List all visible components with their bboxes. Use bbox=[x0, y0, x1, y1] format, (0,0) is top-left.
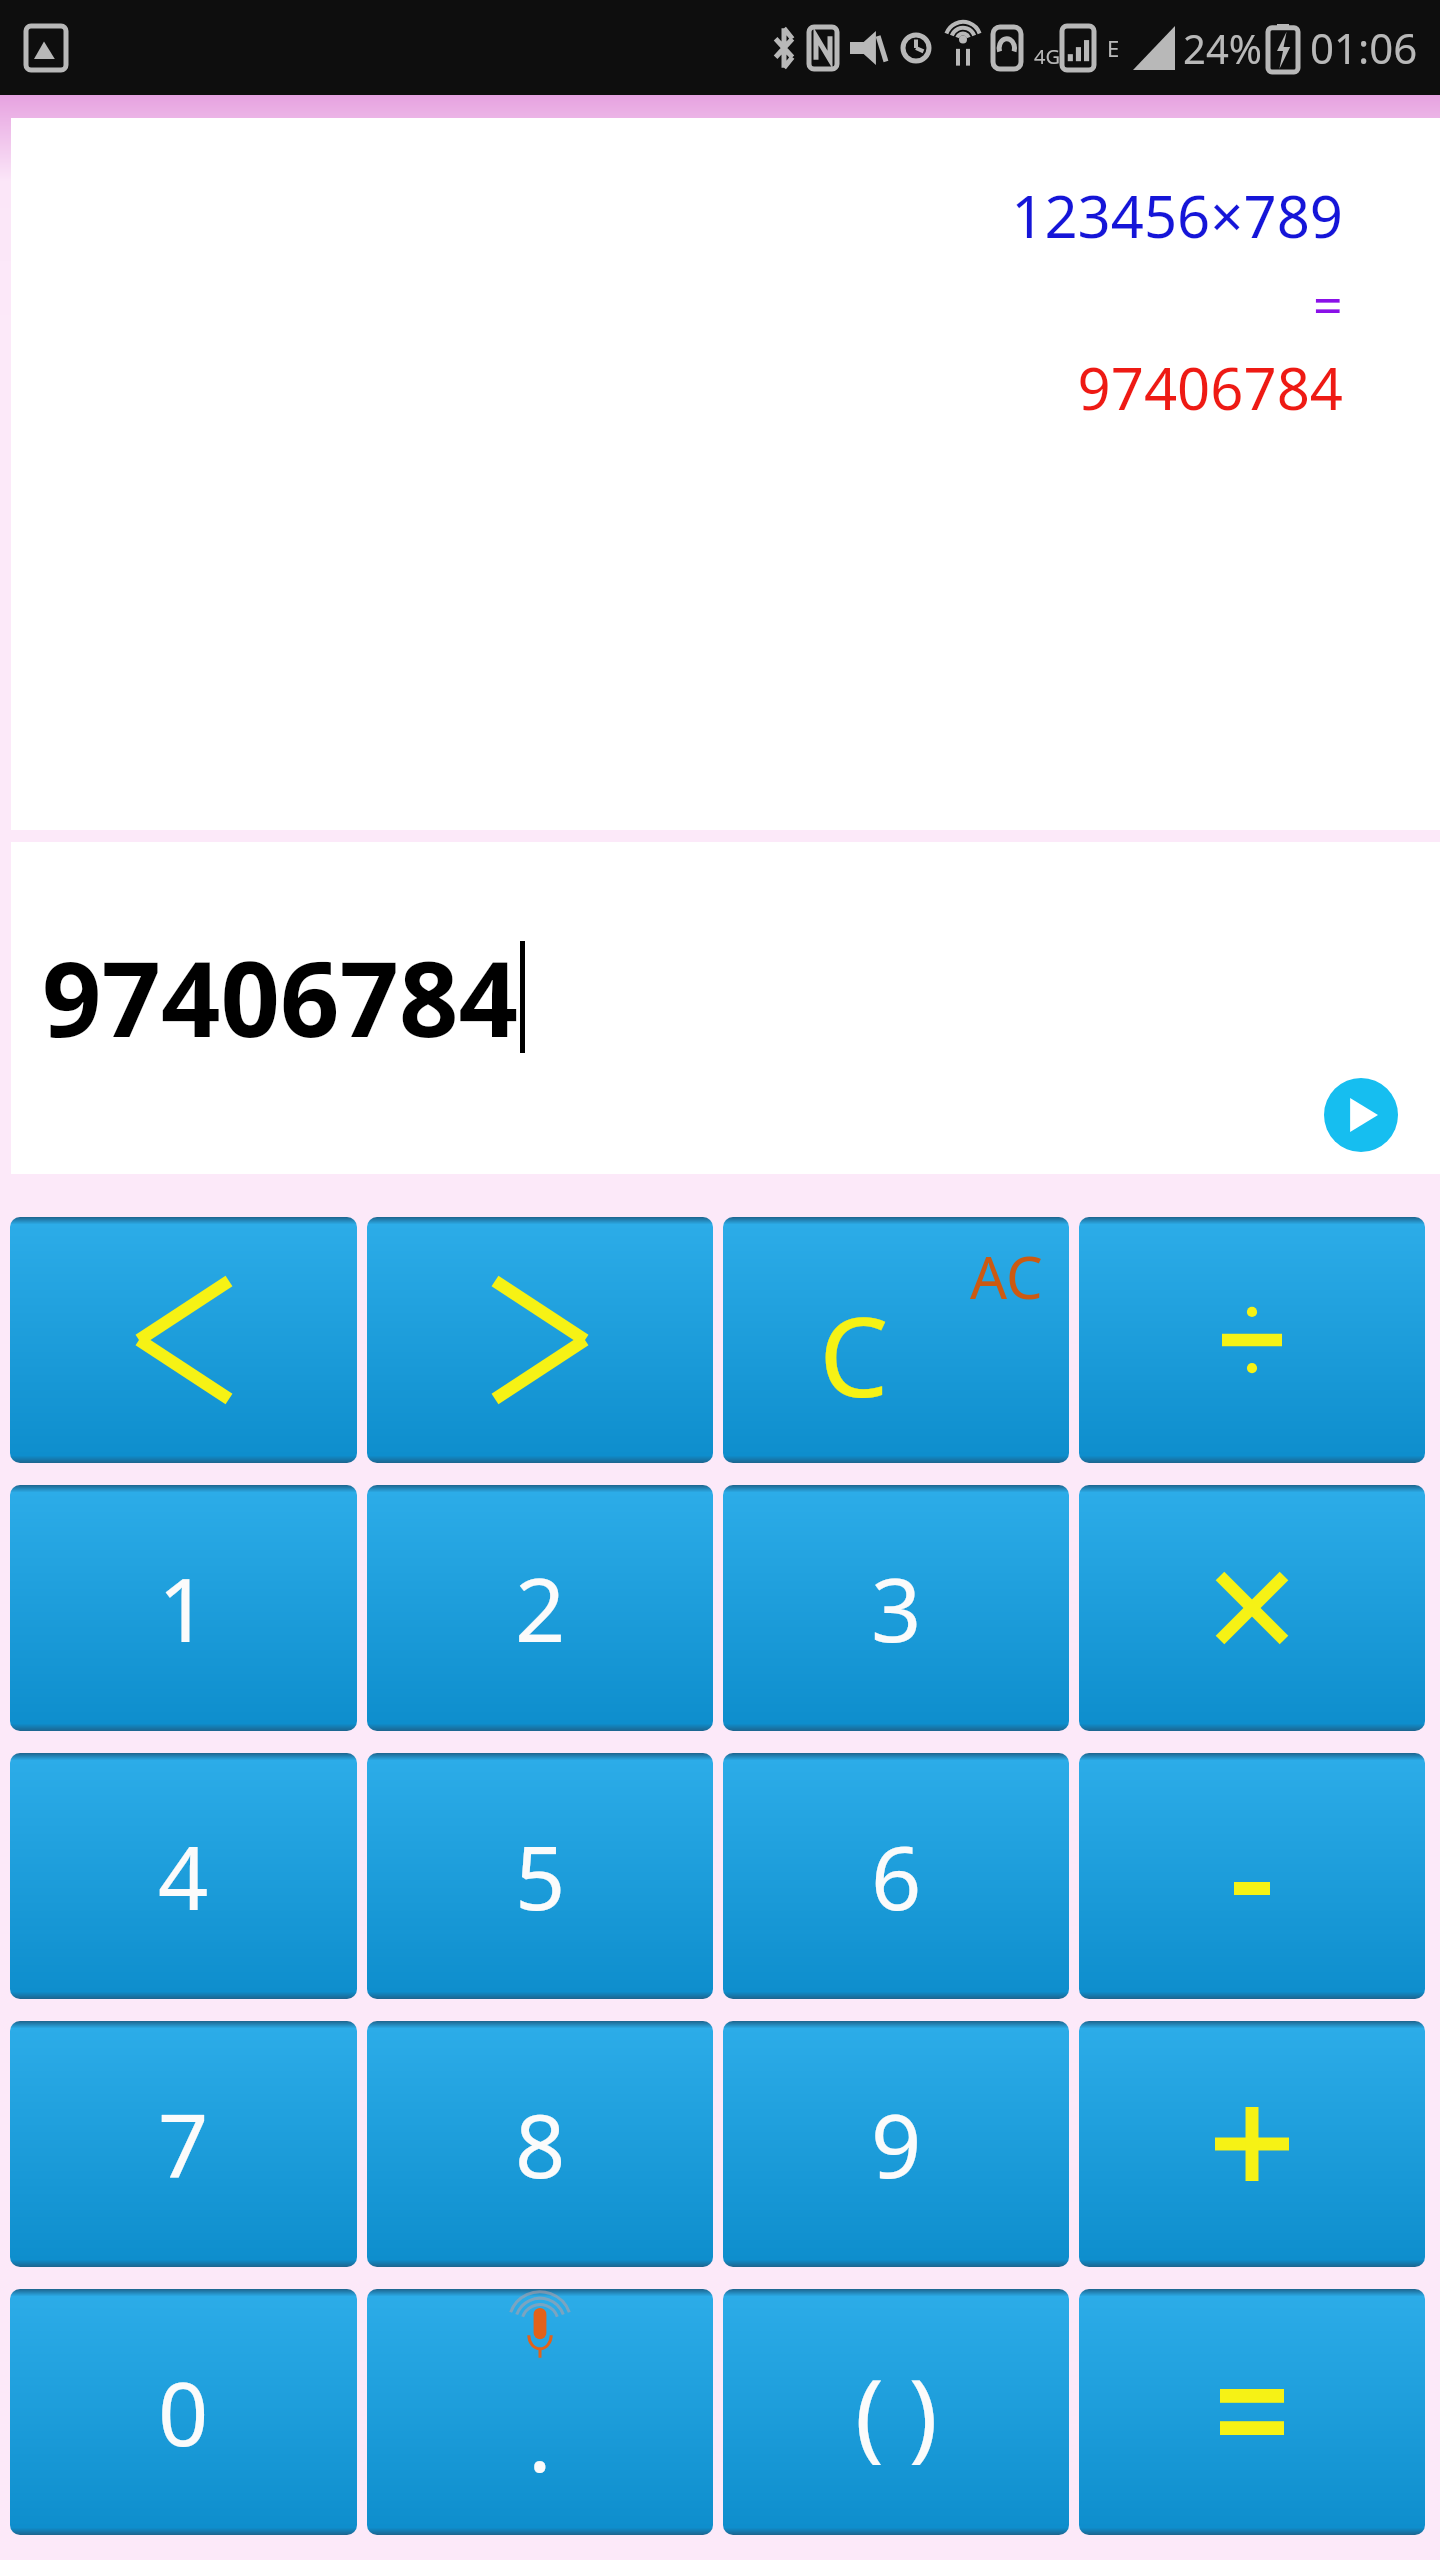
button[interactable]: Equals bbox=[1079, 2289, 1425, 2535]
staticText: = bbox=[1313, 269, 1343, 340]
staticText: 8 bbox=[515, 2084, 566, 2204]
button[interactable]: Evaluate bbox=[1324, 1078, 1398, 1152]
staticText: AC bbox=[970, 1237, 1043, 1316]
staticText: 4 bbox=[158, 1816, 209, 1936]
button[interactable]: Minus bbox=[1079, 1753, 1425, 1999]
button[interactable]: Divide bbox=[1079, 1217, 1425, 1463]
staticText: 9 bbox=[871, 2084, 922, 2204]
staticText: . bbox=[528, 2378, 552, 2498]
button[interactable]: 8 bbox=[367, 2021, 713, 2267]
button[interactable]: 7 bbox=[10, 2021, 357, 2267]
staticText: 4G bbox=[1034, 43, 1060, 70]
button[interactable]: Parentheses bbox=[723, 2289, 1069, 2535]
staticText: ( ) bbox=[855, 2347, 938, 2478]
button[interactable]: 9 bbox=[723, 2021, 1069, 2267]
staticText: 123456×789 bbox=[1011, 176, 1343, 255]
button[interactable]: 2 bbox=[367, 1485, 713, 1731]
staticText: C bbox=[819, 1279, 889, 1429]
staticText: 6 bbox=[871, 1816, 922, 1936]
staticText: 0 bbox=[158, 2352, 209, 2472]
button[interactable]: Clear bbox=[723, 1217, 1069, 1463]
staticText: 2 bbox=[515, 1548, 566, 1668]
staticText: 01:06 bbox=[1310, 19, 1418, 76]
button[interactable]: Move cursor left bbox=[10, 1217, 357, 1463]
button[interactable]: 5 bbox=[367, 1753, 713, 1999]
button[interactable]: 1 bbox=[10, 1485, 357, 1731]
button[interactable]: 97406784 bbox=[11, 842, 1440, 1174]
staticText: E bbox=[1107, 33, 1120, 63]
staticText: 97406784 bbox=[42, 926, 518, 1068]
button[interactable]: Decimal point bbox=[367, 2289, 713, 2535]
button[interactable]: Multiply bbox=[1079, 1485, 1425, 1731]
button[interactable]: Plus bbox=[1079, 2021, 1425, 2267]
staticText: 7 bbox=[158, 2084, 209, 2204]
staticText: 1 bbox=[158, 1548, 209, 1668]
button[interactable]: 6 bbox=[723, 1753, 1069, 1999]
staticText: 97406784 bbox=[1077, 348, 1343, 427]
button[interactable]: 4 bbox=[10, 1753, 357, 1999]
button[interactable]: 3 bbox=[723, 1485, 1069, 1731]
staticText: 5 bbox=[515, 1816, 566, 1936]
button[interactable]: 0 bbox=[10, 2289, 357, 2535]
staticText: 24% bbox=[1183, 21, 1262, 75]
button[interactable]: 123456×789 bbox=[11, 118, 1440, 830]
button[interactable]: Move cursor right bbox=[367, 1217, 713, 1463]
staticText: 3 bbox=[871, 1548, 922, 1668]
